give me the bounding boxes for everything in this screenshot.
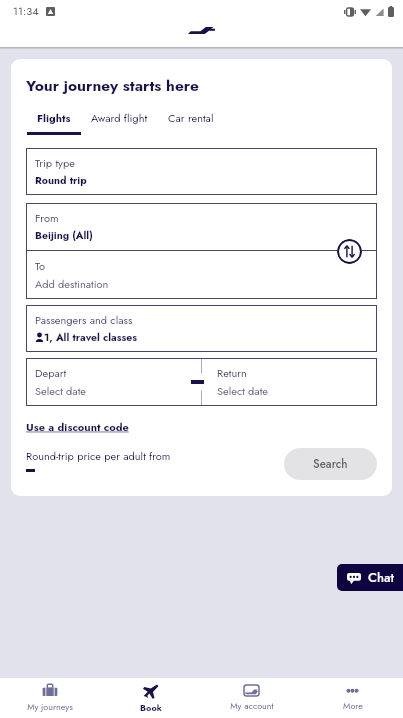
staticText: Use a discount code	[26, 419, 129, 435]
button[interactable]: Depart	[26, 358, 377, 406]
staticText: 11:34	[13, 3, 39, 19]
staticText: Select date	[35, 383, 86, 399]
button[interactable]: Swap origin and destination	[337, 239, 362, 264]
staticText: To	[35, 258, 46, 274]
button[interactable]: Passengers and class	[26, 305, 377, 352]
staticText: Add destination	[35, 276, 109, 292]
staticText: Select date	[217, 383, 268, 399]
staticText: Round trip	[35, 173, 87, 188]
button[interactable]: Flights	[27, 110, 81, 135]
button[interactable]: Search	[284, 448, 377, 480]
button[interactable]: More	[302, 678, 403, 718]
button[interactable]: Use a discount code	[26, 419, 129, 435]
button[interactable]: My journeys	[0, 678, 100, 718]
staticText: Trip type	[35, 155, 75, 171]
staticText: Car rental	[168, 110, 214, 126]
staticText: More	[343, 699, 363, 712]
staticText: Flights	[37, 110, 71, 126]
button[interactable]: Chat	[337, 564, 403, 591]
staticText: Your journey starts here	[26, 74, 199, 96]
staticText: Return	[217, 365, 247, 381]
button[interactable]: Book	[100, 678, 201, 718]
staticText: From	[35, 210, 59, 226]
button[interactable]: Car rental	[158, 110, 224, 132]
staticText: Beijing (All)	[35, 228, 93, 243]
staticText: My account	[230, 699, 274, 712]
staticText: Search	[313, 456, 348, 473]
button[interactable]: Trip type	[26, 148, 377, 195]
button[interactable]: My account	[201, 678, 302, 718]
staticText: Book	[140, 701, 162, 714]
button[interactable]: From	[26, 203, 377, 299]
staticText: Depart	[35, 365, 67, 381]
staticText: 1, All travel classes	[44, 330, 138, 345]
staticText: My journeys	[27, 700, 73, 713]
button[interactable]: Award flight	[81, 110, 158, 132]
staticText: Round-trip price per adult from	[26, 448, 171, 464]
staticText: Chat	[368, 568, 395, 587]
staticText: Passengers and class	[35, 312, 133, 328]
staticText: Award flight	[91, 110, 148, 126]
